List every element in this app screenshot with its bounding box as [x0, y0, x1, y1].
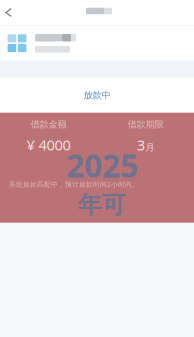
staticText: 借款期限 [127, 119, 163, 130]
staticText: 系统放款匹配中，预计放款时间2小时内。 [9, 180, 139, 189]
staticText: 3 [137, 135, 145, 155]
staticText: 月 [145, 142, 154, 153]
staticText: 放款中 [83, 89, 110, 101]
button[interactable]: Back [0, 0, 20, 25]
staticText: 年可 [78, 190, 126, 220]
staticText: 借款金额 [30, 119, 66, 130]
staticText: ¥ 4000 [26, 135, 70, 155]
staticText: 2025 [66, 144, 138, 186]
